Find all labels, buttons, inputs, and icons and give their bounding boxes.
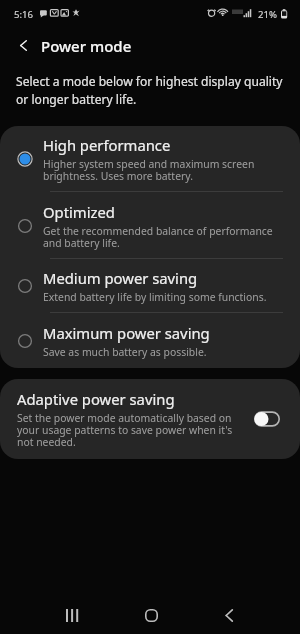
staticText: Extend battery life by limiting some fun… <box>43 290 267 304</box>
staticText: 21% <box>258 8 277 21</box>
staticText: Set the power mode automatically based o… <box>17 411 244 449</box>
button[interactable]: Adaptive power saving <box>0 379 300 459</box>
staticText: High performance <box>43 135 171 155</box>
button[interactable]: Optimized <box>0 192 300 259</box>
staticText: Optimized <box>43 202 115 222</box>
button[interactable]: Home <box>134 598 168 632</box>
button[interactable]: Adaptive power saving toggle <box>254 410 280 428</box>
staticText: Power mode <box>41 36 132 56</box>
staticText: Higher system speed and maximum screen b… <box>43 157 284 183</box>
button[interactable]: Back <box>212 598 246 632</box>
button[interactable]: Medium power saving <box>0 259 300 313</box>
button[interactable]: Maximum power saving <box>0 313 300 368</box>
button[interactable]: High performance <box>0 126 300 192</box>
button[interactable]: Recents <box>55 598 89 632</box>
staticText: Save as much battery as possible. <box>43 345 207 359</box>
staticText: 5:16 <box>14 8 34 21</box>
staticText: Adaptive power saving <box>17 389 175 409</box>
staticText: Maximum power saving <box>43 323 210 343</box>
staticText: Select a mode below for highest display … <box>16 73 288 107</box>
button[interactable]: Navigate up <box>11 33 35 57</box>
staticText: Get the recommended balance of performan… <box>43 224 284 250</box>
staticText: Medium power saving <box>43 268 198 288</box>
